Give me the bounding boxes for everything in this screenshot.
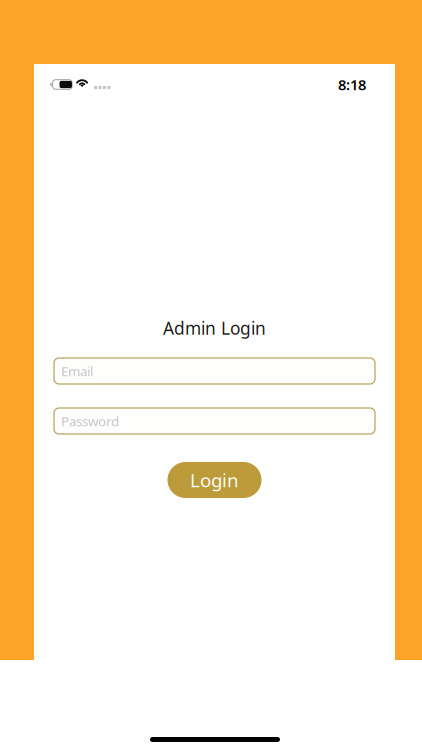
staticText: Admin Login	[163, 316, 266, 339]
staticText: Email	[61, 362, 93, 380]
staticText: Login	[190, 468, 239, 492]
staticText: 8:18	[338, 75, 366, 94]
staticText: Password	[61, 412, 119, 430]
button[interactable]: Password	[54, 408, 375, 434]
button[interactable]: Email	[54, 358, 375, 384]
button[interactable]: Login	[167, 462, 261, 498]
